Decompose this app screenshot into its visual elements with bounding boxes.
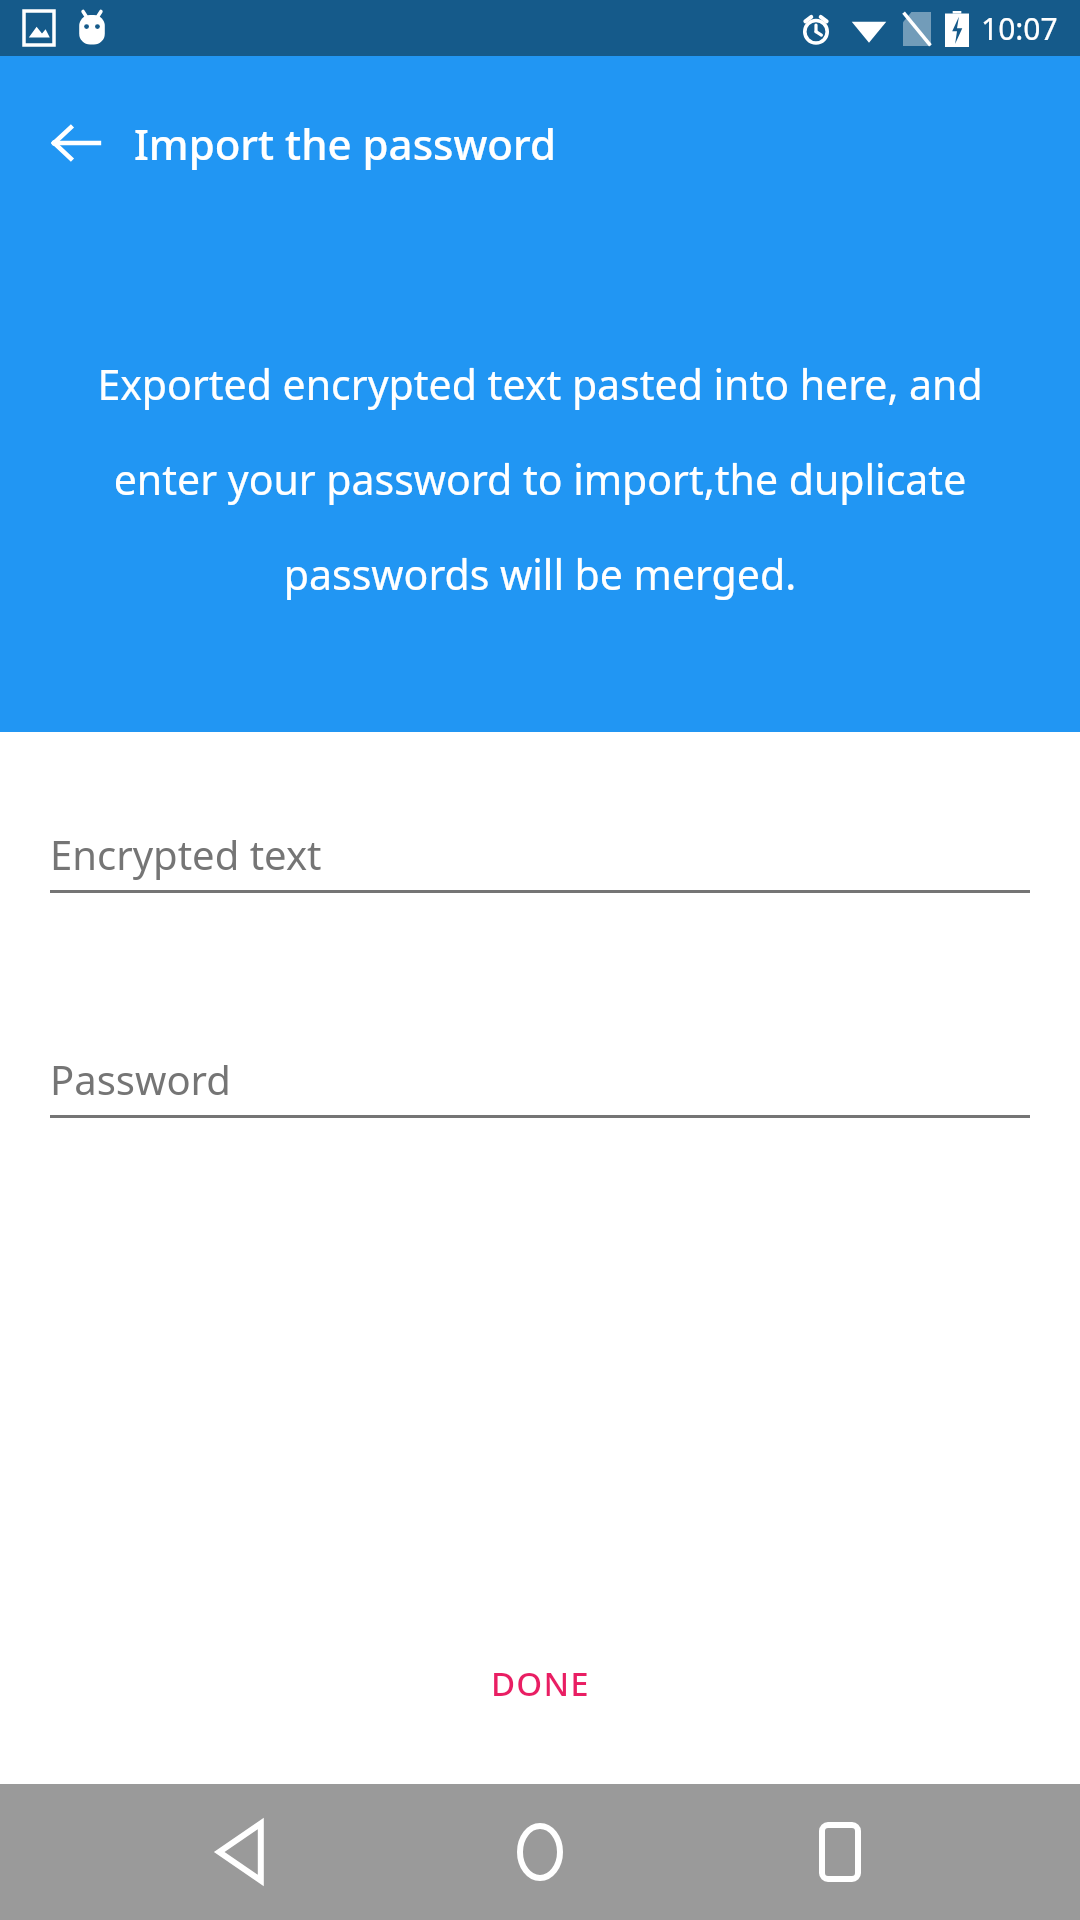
button[interactable]: Back [34, 101, 118, 185]
staticText: Encrypted text [50, 827, 322, 881]
staticText: Import the password [134, 115, 556, 172]
button[interactable]: DONE [467, 1645, 614, 1722]
staticText: Exported encrypted text pasted into here… [48, 356, 1032, 602]
button[interactable]: Home [480, 1792, 600, 1912]
staticText: 10:07 [981, 8, 1058, 49]
staticText: Password [50, 1052, 231, 1106]
button[interactable]: Back [180, 1792, 300, 1912]
button[interactable]: Password [50, 1043, 1030, 1118]
button[interactable]: Recent apps [780, 1792, 900, 1912]
staticText: DONE [491, 1661, 590, 1706]
button[interactable]: Encrypted text [50, 818, 1030, 893]
